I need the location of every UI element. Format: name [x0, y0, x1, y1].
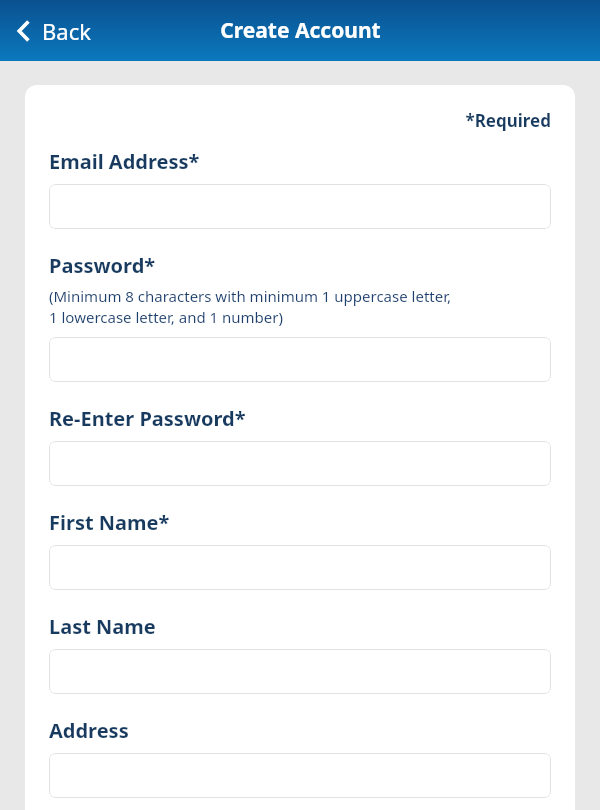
button[interactable]: Email Address*: [49, 184, 551, 229]
button[interactable]: Back: [10, 10, 95, 52]
other: Back: [14, 16, 34, 46]
staticText: Create Account: [220, 16, 381, 45]
staticText: Password*: [49, 252, 156, 279]
staticText: Re-Enter Password*: [49, 405, 246, 432]
button[interactable]: Re-Enter Password*: [49, 441, 551, 486]
staticText: Back: [42, 16, 91, 46]
staticText: Last Name: [49, 613, 156, 640]
staticText: Email Address*: [49, 148, 200, 175]
button[interactable]: First Name*: [49, 545, 551, 590]
button[interactable]: Last Name: [49, 649, 551, 694]
staticText: First Name*: [49, 509, 170, 536]
staticText: Address: [49, 717, 129, 744]
staticText: (Minimum 8 characters with minimum 1 upp…: [49, 286, 452, 328]
button[interactable]: Address: [49, 753, 551, 798]
button[interactable]: Password*: [49, 337, 551, 382]
staticText: *Required: [49, 109, 551, 132]
